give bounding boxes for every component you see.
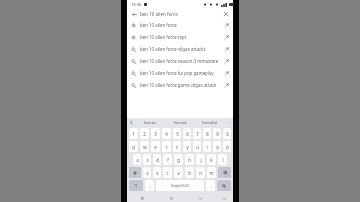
- button[interactable]: y: [183, 141, 191, 152]
- staticText: 4: [165, 131, 168, 137]
- button[interactable]: n: [196, 167, 205, 178]
- button[interactable]: l: [218, 154, 227, 165]
- button[interactable]: ben 10 alien force ba pop gameplay: [127, 67, 233, 79]
- staticText: f: [167, 157, 169, 163]
- button[interactable]: o: [213, 141, 221, 152]
- button[interactable]: v: [174, 167, 183, 178]
- button[interactable]: 5: [173, 128, 181, 139]
- button[interactable]: 6: [183, 128, 191, 139]
- staticText: forceful: [202, 120, 218, 126]
- button[interactable]: 3: [151, 128, 160, 139]
- button[interactable]: Previous: [127, 118, 135, 127]
- staticText: ben 10 alien force game vilgax attack: [140, 82, 222, 88]
- button[interactable]: z: [143, 167, 151, 178]
- staticText: 8: [206, 131, 209, 137]
- button[interactable]: Symbols: [129, 180, 143, 191]
- button[interactable]: Back: [130, 10, 138, 18]
- staticText: i: [206, 144, 208, 150]
- button[interactable]: Back: [186, 194, 215, 202]
- button[interactable]: m: [207, 167, 216, 178]
- staticText: e: [154, 144, 157, 150]
- staticText: r: [166, 144, 168, 150]
- staticText: 3: [154, 131, 157, 137]
- button[interactable]: ben 10 alien force toys: [127, 31, 233, 43]
- button[interactable]: forced: [165, 118, 195, 127]
- staticText: 9: [216, 131, 219, 137]
- staticText: 2: [143, 131, 146, 137]
- button[interactable]: 9: [213, 128, 221, 139]
- button[interactable]: forces: [135, 118, 165, 127]
- button[interactable]: Backspace: [218, 167, 231, 178]
- button[interactable]: g: [174, 154, 183, 165]
- staticText: forces: [144, 120, 156, 126]
- button[interactable]: Shift: [129, 167, 141, 178]
- button[interactable]: p: [223, 141, 231, 152]
- staticText: k: [210, 157, 213, 163]
- staticText: z: [146, 170, 149, 176]
- button[interactable]: f: [163, 154, 172, 165]
- button[interactable]: ben 10 alien force vilgax attacks: [127, 43, 233, 55]
- staticText: n: [199, 170, 202, 176]
- button[interactable]: ben 10 alien force game vilgax attack: [127, 79, 233, 91]
- button[interactable]: i: [203, 141, 211, 152]
- button[interactable]: ben 10 alien force season 3 remastere: [127, 55, 233, 67]
- staticText: c: [166, 170, 169, 176]
- staticText: x: [156, 170, 159, 176]
- staticText: g: [177, 157, 180, 163]
- staticText: 0: [226, 131, 229, 137]
- staticText: ,: [149, 183, 151, 189]
- staticText: s: [146, 157, 149, 163]
- button[interactable]: Clear: [222, 10, 230, 18]
- staticText: 6: [186, 131, 189, 137]
- staticText: 1: [132, 131, 135, 137]
- staticText: w: [143, 144, 147, 150]
- staticText: t: [176, 144, 178, 150]
- button[interactable]: .: [206, 180, 215, 191]
- button[interactable]: e: [151, 141, 160, 152]
- button[interactable]: c: [163, 167, 172, 178]
- button[interactable]: ben 10 alien force: [127, 19, 233, 31]
- button[interactable]: Hide keyboard: [215, 194, 233, 202]
- staticText: d: [156, 157, 159, 163]
- staticText: ben 10 alien: [140, 11, 167, 17]
- button[interactable]: Search: [217, 180, 231, 191]
- button[interactable]: 2: [140, 128, 149, 139]
- button[interactable]: a: [133, 154, 141, 165]
- staticText: ben 10 alien force toys: [140, 34, 222, 40]
- button[interactable]: h: [185, 154, 194, 165]
- button[interactable]: w: [140, 141, 149, 152]
- button[interactable]: 4: [162, 128, 171, 139]
- staticText: b: [188, 170, 191, 176]
- button[interactable]: x: [153, 167, 161, 178]
- staticText: 13:36: [131, 2, 142, 7]
- button[interactable]: Space: [156, 180, 204, 191]
- button[interactable]: r: [162, 141, 171, 152]
- staticText: 5: [176, 131, 179, 137]
- staticText: j: [200, 157, 202, 163]
- button[interactable]: k: [207, 154, 216, 165]
- staticText: ben 10 alien force season 3 remastere: [140, 58, 222, 64]
- staticText: 7: [196, 131, 199, 137]
- button[interactable]: q: [129, 141, 138, 152]
- button[interactable]: u: [193, 141, 201, 152]
- staticText: y: [186, 144, 189, 150]
- staticText: ben 10 alien force ba pop gameplay: [140, 70, 222, 76]
- button[interactable]: 0: [223, 128, 231, 139]
- button[interactable]: d: [153, 154, 161, 165]
- button[interactable]: s: [143, 154, 151, 165]
- button[interactable]: forceful: [195, 118, 225, 127]
- button[interactable]: 1: [129, 128, 138, 139]
- button[interactable]: j: [196, 154, 205, 165]
- staticText: force: [167, 11, 178, 17]
- button[interactable]: 8: [203, 128, 211, 139]
- button[interactable]: Recents: [127, 194, 157, 202]
- button[interactable]: ,: [145, 180, 154, 191]
- button[interactable]: More suggestions: [225, 118, 233, 127]
- staticText: ben 10 alien force vilgax attacks: [140, 46, 222, 52]
- button[interactable]: 7: [193, 128, 201, 139]
- staticText: p: [226, 144, 229, 150]
- button[interactable]: b: [185, 167, 194, 178]
- button[interactable]: Home: [157, 194, 186, 202]
- button[interactable]: t: [173, 141, 181, 152]
- staticText: o: [216, 144, 219, 150]
